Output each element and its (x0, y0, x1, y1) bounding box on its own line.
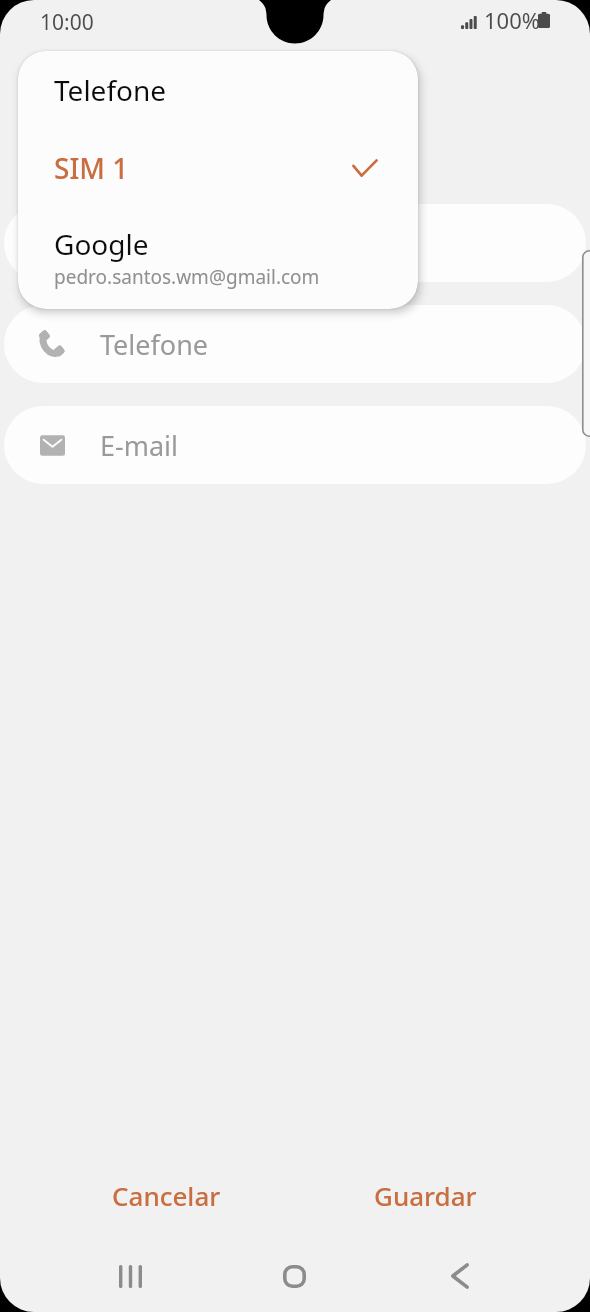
staticText: Google (54, 225, 149, 263)
staticText: 100% (484, 5, 541, 35)
button[interactable]: Back (377, 1240, 542, 1312)
button[interactable]: Telefone (18, 51, 418, 129)
button[interactable]: Guardar (296, 1164, 555, 1226)
staticText: pedro.santos.wm@gmail.com (54, 264, 320, 290)
button[interactable]: Recent apps (48, 1240, 212, 1312)
staticText: Cancelar (112, 1178, 221, 1213)
button[interactable] (4, 204, 586, 282)
button[interactable]: Telefone (4, 305, 586, 383)
button[interactable]: Home (212, 1240, 377, 1312)
staticText: SIM 1 (54, 149, 129, 187)
staticText: Telefone (100, 326, 209, 363)
button[interactable]: SIM 1 (18, 129, 418, 207)
button[interactable]: E-mail (4, 406, 586, 484)
button[interactable]: Cancelar (37, 1164, 296, 1226)
staticText: Guardar (374, 1178, 477, 1213)
staticText: Telefone (54, 71, 167, 109)
button[interactable]: Google (18, 207, 418, 309)
staticText: 10:00 (40, 8, 94, 37)
staticText: E-mail (100, 427, 179, 464)
